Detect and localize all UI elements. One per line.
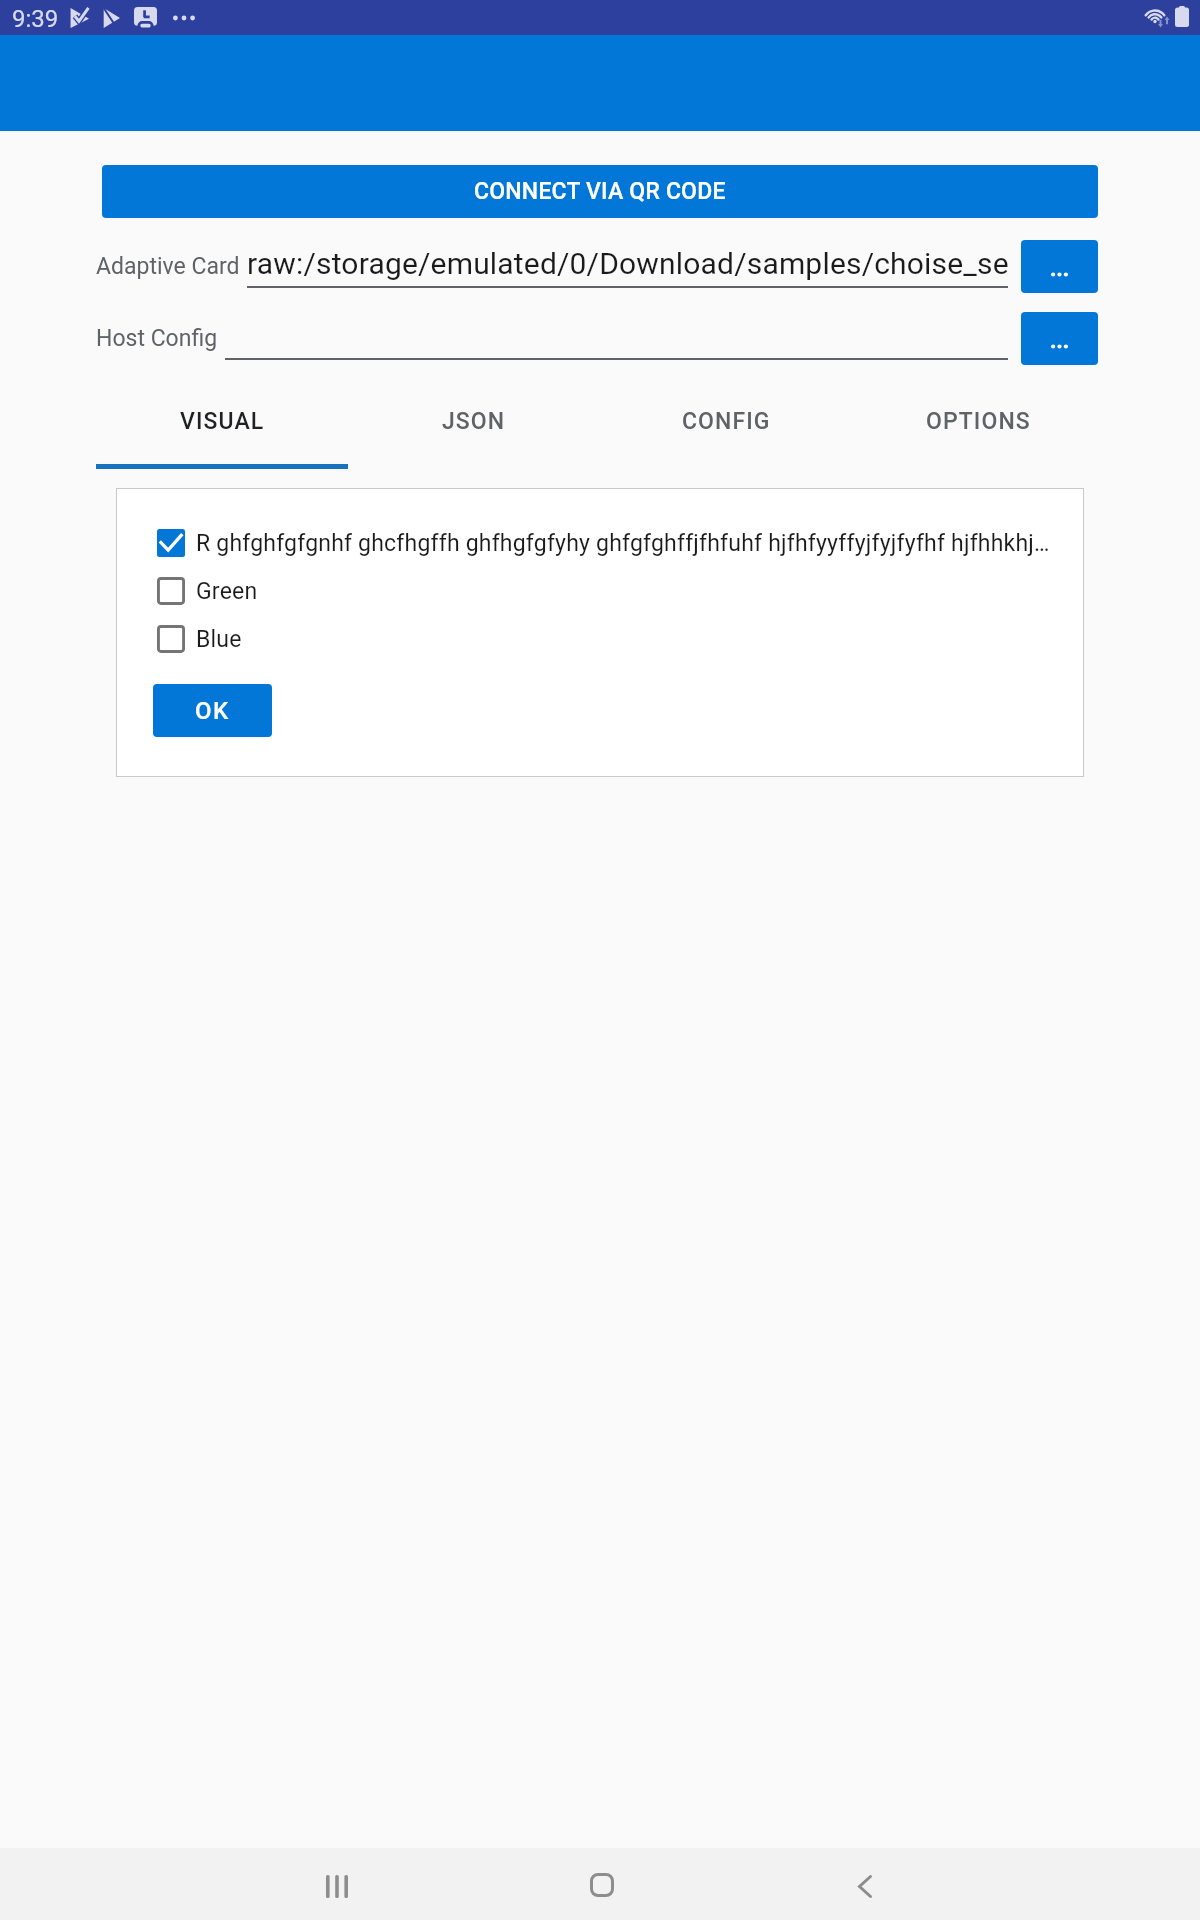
button[interactable]: CONFIG xyxy=(600,389,852,464)
staticText: raw:/storage/emulated/0/Download/samples… xyxy=(247,246,1008,281)
button[interactable]: OPTIONS xyxy=(852,389,1104,464)
button[interactable]: Browse files xyxy=(1021,312,1098,365)
button[interactable]: OK xyxy=(153,684,272,737)
staticText: Adaptive Card xyxy=(96,253,240,280)
staticText: Green xyxy=(196,578,258,605)
staticText: JSON xyxy=(442,408,506,435)
staticText: CONFIG xyxy=(682,408,771,435)
staticText: CONNECT VIA QR CODE xyxy=(474,178,726,205)
button[interactable]: CONNECT VIA QR CODE xyxy=(102,165,1098,218)
staticText: R ghfghfgfgnhf ghcfhgffh ghfhgfgfyhy ghf… xyxy=(196,530,1050,557)
staticText: OPTIONS xyxy=(926,408,1031,435)
button[interactable]: VISUAL xyxy=(96,389,348,464)
button[interactable]: Blue xyxy=(157,625,1072,653)
button[interactable]: Recent apps xyxy=(277,1850,397,1920)
staticText: OK xyxy=(195,697,230,725)
staticText: 9:39 xyxy=(12,5,59,33)
button[interactable]: JSON xyxy=(348,389,600,464)
staticText: VISUAL xyxy=(180,408,265,435)
button[interactable]: Green xyxy=(157,577,1072,605)
button[interactable]: Home xyxy=(542,1849,662,1920)
button[interactable]: Browse files xyxy=(1021,240,1098,293)
button[interactable]: R ghfghfgfgnhf ghcfhgffh ghfhgfgfyhy ghf… xyxy=(157,529,1072,557)
staticText: Blue xyxy=(196,626,242,653)
button[interactable]: Back xyxy=(805,1850,925,1920)
staticText: Host Config xyxy=(96,325,218,352)
